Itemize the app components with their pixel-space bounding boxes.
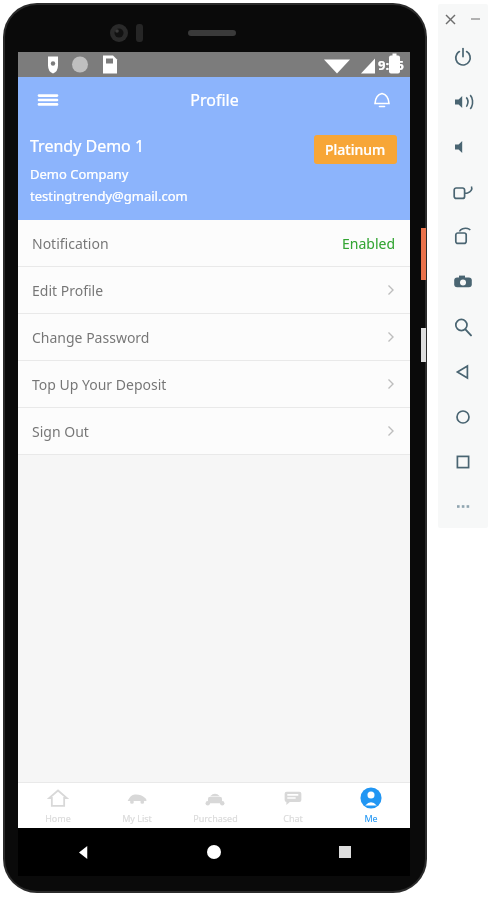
button[interactable]: More	[438, 484, 488, 528]
button[interactable]: Rotate right	[438, 214, 488, 259]
button[interactable]: Platinum	[314, 135, 397, 164]
button[interactable]: Open navigation menu	[28, 80, 68, 120]
button[interactable]: Home	[148, 828, 279, 876]
staticText: Sign Out	[32, 422, 89, 441]
button[interactable]: Me	[332, 783, 410, 828]
button[interactable]: Minimize	[463, 4, 488, 34]
staticText: My List	[122, 812, 152, 824]
staticText: Edit Profile	[32, 281, 104, 300]
staticText: Enabled	[342, 234, 396, 253]
button[interactable]: Home	[438, 394, 488, 439]
button[interactable]: Volume down	[438, 124, 488, 169]
button[interactable]: Top Up Your Deposit	[18, 361, 410, 407]
button[interactable]: Notification	[18, 220, 410, 266]
button[interactable]: Close	[438, 4, 463, 34]
button[interactable]: My List	[97, 783, 176, 828]
button[interactable]: Take screenshot	[438, 259, 488, 304]
button[interactable]: Edit Profile	[18, 267, 410, 313]
staticText: Platinum	[325, 140, 386, 159]
staticText: 9:15	[378, 56, 404, 74]
button[interactable]: Notifications	[362, 80, 402, 120]
button[interactable]: Rotate left	[438, 169, 488, 214]
staticText: Me	[364, 812, 378, 824]
staticText: Trendy Demo 1	[30, 135, 145, 157]
button[interactable]: Chat	[254, 783, 332, 828]
staticText: Demo Company	[30, 165, 129, 183]
staticText: Top Up Your Deposit	[32, 375, 167, 394]
button[interactable]: Back	[438, 349, 488, 394]
staticText: testingtrendy@gmail.com	[30, 187, 188, 205]
button[interactable]: Power	[438, 34, 488, 79]
staticText: Purchased	[193, 812, 238, 824]
button[interactable]: Overview	[438, 439, 488, 484]
button[interactable]: Back	[18, 828, 148, 876]
staticText: Chat	[283, 812, 303, 824]
staticText: Profile	[190, 89, 239, 111]
button[interactable]: Volume up	[438, 79, 488, 124]
button[interactable]: Change Password	[18, 314, 410, 360]
staticText: Notification	[32, 234, 109, 253]
button[interactable]: Zoom	[438, 304, 488, 349]
button[interactable]: Home	[18, 783, 97, 828]
button[interactable]: Purchased	[176, 783, 254, 828]
staticText: Home	[45, 812, 71, 824]
staticText: Change Password	[32, 328, 150, 347]
button[interactable]: Sign Out	[18, 408, 410, 454]
button[interactable]: Recent apps	[279, 828, 410, 876]
